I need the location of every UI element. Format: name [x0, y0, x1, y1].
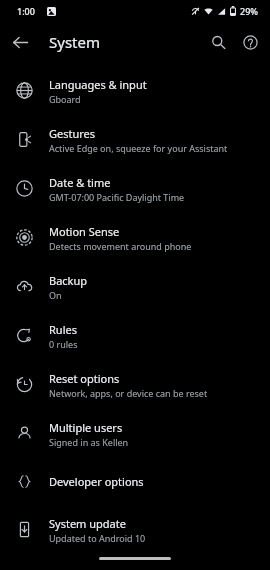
staticText: Active Edge on, squeeze for your Assista… [49, 142, 228, 154]
button[interactable]: Developer options [0, 458, 270, 505]
staticText: Date & time [49, 175, 111, 190]
staticText: Reset options [49, 371, 120, 386]
staticText: Network, apps, or device can be reset [49, 387, 208, 399]
staticText: 1:00 [17, 5, 35, 17]
staticText: Rules [49, 322, 77, 337]
staticText: GMT-07:00 Pacific Daylight Time [49, 191, 185, 203]
staticText: System [49, 32, 100, 52]
staticText: Signed in as Kellen [49, 436, 129, 448]
staticText: Languages & input [49, 77, 147, 92]
button[interactable]: Rules [0, 311, 270, 360]
staticText: System update [49, 516, 126, 531]
staticText: Motion Sense [49, 224, 120, 239]
staticText: Backup [49, 273, 88, 288]
button[interactable]: Back [8, 30, 32, 54]
staticText: 0 rules [49, 338, 78, 350]
button[interactable]: Date & time [0, 164, 270, 213]
staticText: Updated to Android 10 [49, 532, 146, 544]
button[interactable]: Reset options [0, 360, 270, 409]
button[interactable]: System update [0, 505, 270, 554]
button[interactable]: Backup [0, 262, 270, 311]
staticText: Developer options [49, 474, 144, 489]
staticText: 29% [240, 5, 258, 17]
staticText: Detects movement around phone [49, 240, 192, 252]
button[interactable]: Help [237, 29, 263, 55]
button[interactable]: Search [205, 29, 231, 55]
staticText: On [49, 289, 62, 301]
button[interactable]: Multiple users [0, 409, 270, 458]
button[interactable]: Gestures [0, 115, 270, 164]
button[interactable]: Motion Sense [0, 213, 270, 262]
staticText: Gboard [49, 93, 81, 105]
button[interactable]: Languages & input [0, 66, 270, 115]
staticText: Multiple users [49, 420, 123, 435]
staticText: Gestures [49, 126, 96, 141]
